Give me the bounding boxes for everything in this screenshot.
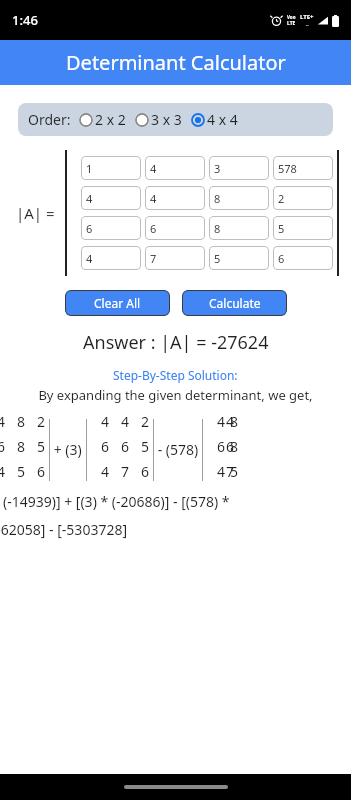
staticText: 3 x 3 (151, 110, 182, 129)
button[interactable]: 4 (145, 186, 205, 210)
staticText: = [(1) * (-2)] - [(4) * (-14939)] + [(3)… (0, 492, 233, 511)
button[interactable]: 4 (81, 246, 141, 270)
button[interactable]: 6 (273, 246, 333, 270)
staticText: 6 (150, 221, 157, 236)
button[interactable]: Calculate (182, 290, 287, 316)
staticText: 6 (121, 437, 130, 456)
staticText: 4 (101, 412, 110, 431)
staticText: 4 (150, 161, 157, 176)
staticText: 6 (278, 251, 285, 266)
staticText: Step-By-Step Solution: (113, 367, 238, 383)
staticText: 7 (150, 251, 157, 266)
button[interactable]: 2 (273, 186, 333, 210)
staticText: 4 (101, 462, 110, 481)
staticText: 5 (278, 221, 285, 236)
staticText: |A| = (16, 203, 55, 223)
staticText: Determinant Calculator (66, 49, 286, 76)
staticText: - (578) (154, 440, 202, 459)
staticText: 7 (226, 462, 230, 481)
staticText: 5 (17, 462, 26, 481)
staticText: 1:46 (12, 11, 38, 29)
staticText: 6 (86, 221, 93, 236)
button[interactable]: 3 x 3 (134, 110, 183, 129)
staticText: 8 (214, 191, 221, 206)
staticText: 4 (0, 412, 6, 431)
staticText: 7 (121, 462, 130, 481)
button[interactable]: Clear All (65, 290, 170, 316)
staticText: 5 (141, 437, 150, 456)
staticText: 6 (101, 437, 110, 456)
button[interactable]: 1 (81, 156, 141, 180)
staticText: By expanding the given determinant, we g… (38, 386, 313, 404)
staticText: LTE+ (300, 13, 314, 21)
staticText: 3 (214, 161, 221, 176)
staticText: 2 (141, 412, 150, 431)
staticText: 5 (214, 251, 221, 266)
button[interactable]: 4 (145, 156, 205, 180)
staticText: Order: (28, 110, 71, 129)
staticText: 2 (278, 191, 285, 206)
staticText: 578 (278, 161, 297, 176)
staticText: Clear All (94, 295, 141, 311)
staticText: 4 (226, 412, 230, 431)
staticText: 2 (37, 412, 46, 431)
button[interactable]: 5 (273, 216, 333, 240)
button[interactable]: Home gesture bar (124, 785, 228, 789)
button[interactable]: 4 (81, 186, 141, 210)
staticText: 4 (150, 191, 157, 206)
staticText: Answer : |A| = -27624 (83, 330, 269, 355)
staticText: + (3) (50, 440, 86, 459)
button[interactable]: 8 (209, 216, 269, 240)
staticText: 6 (226, 437, 230, 456)
staticText: = [-2] - [59756] + [-62058] - [-5303728] (0, 520, 128, 539)
button[interactable]: 7 (145, 246, 205, 270)
staticText: Calculate (209, 295, 261, 311)
button[interactable]: 578 (273, 156, 333, 180)
staticText: 6 (37, 462, 46, 481)
staticText: 8 (17, 437, 26, 456)
staticText: 2 x 2 (95, 110, 126, 129)
button[interactable]: 3 (209, 156, 269, 180)
staticText: 8 (214, 221, 221, 236)
staticText: .. (306, 21, 309, 28)
staticText: 4 (0, 462, 6, 481)
staticText: 4 (121, 412, 130, 431)
staticText: 4 (217, 412, 226, 431)
staticText: LTE (287, 20, 296, 27)
button[interactable]: 6 (145, 216, 205, 240)
staticText: 4 (217, 462, 226, 481)
staticText: Voo (287, 14, 296, 20)
staticText: 6 (217, 437, 226, 456)
staticText: 4 x 4 (207, 110, 238, 129)
staticText: 1 (86, 161, 93, 176)
button[interactable]: 2 x 2 (78, 110, 127, 129)
staticText: 8 (17, 412, 26, 431)
button[interactable]: 8 (209, 186, 269, 210)
staticText: 5 (37, 437, 46, 456)
staticText: 6 (141, 462, 150, 481)
staticText: 6 (0, 437, 6, 456)
staticText: 4 (86, 191, 93, 206)
button[interactable]: 5 (209, 246, 269, 270)
staticText: 4 (86, 251, 93, 266)
button[interactable]: 6 (81, 216, 141, 240)
button[interactable]: 4 x 4 (190, 110, 239, 129)
